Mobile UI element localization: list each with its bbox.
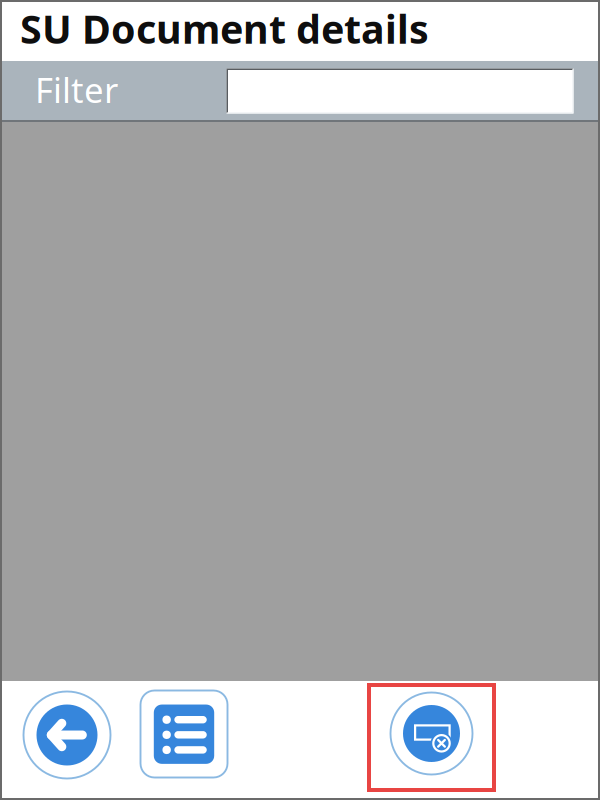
button[interactable]: Back	[21, 689, 113, 781]
staticText: Filter	[35, 66, 118, 113]
button[interactable]: Show list	[138, 688, 230, 780]
button[interactable]: Cancel document	[369, 685, 494, 790]
staticText: SU Document details	[20, 2, 429, 55]
